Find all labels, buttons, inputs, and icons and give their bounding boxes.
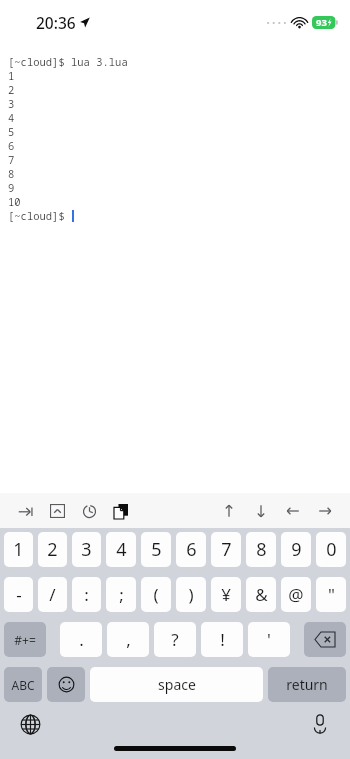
staticText: ; bbox=[119, 583, 124, 606]
button[interactable]: Right bbox=[312, 496, 338, 526]
button[interactable]: #+= bbox=[4, 622, 46, 657]
button[interactable]: Change keyboard bbox=[14, 708, 46, 740]
staticText: 7 bbox=[221, 537, 232, 562]
button[interactable]: Control bbox=[44, 496, 70, 526]
staticText: 2 bbox=[47, 537, 58, 562]
button[interactable]: ! bbox=[201, 622, 243, 657]
button[interactable]: , bbox=[107, 622, 149, 657]
button[interactable]: 9 bbox=[281, 532, 311, 567]
button[interactable]: Left bbox=[280, 496, 306, 526]
button[interactable]: ? bbox=[154, 622, 196, 657]
button[interactable]: Tab bbox=[12, 496, 38, 526]
staticText: 3 bbox=[81, 537, 92, 562]
staticText: ! bbox=[220, 628, 225, 651]
staticText: @ bbox=[288, 583, 304, 606]
staticText: ABC bbox=[11, 677, 35, 693]
staticText: 1 bbox=[8, 69, 15, 83]
staticText: 93 bbox=[316, 16, 327, 29]
button[interactable]: Backspace bbox=[304, 622, 346, 657]
staticText: - bbox=[16, 583, 22, 606]
staticText: return bbox=[286, 675, 328, 694]
button[interactable]: ABC bbox=[4, 667, 42, 702]
button[interactable]: return bbox=[268, 667, 346, 702]
staticText: 5 bbox=[8, 125, 15, 139]
button[interactable]: 8 bbox=[246, 532, 276, 567]
button[interactable]: - bbox=[4, 577, 33, 612]
button[interactable]: ( bbox=[141, 577, 171, 612]
button[interactable]: 6 bbox=[176, 532, 206, 567]
button[interactable]: / bbox=[38, 577, 67, 612]
button[interactable]: : bbox=[72, 577, 101, 612]
staticText: [~cloud]$ lua 3.lua bbox=[8, 55, 128, 69]
button[interactable]: Up bbox=[216, 496, 242, 526]
button[interactable]: space bbox=[90, 667, 263, 702]
button[interactable]: 3 bbox=[72, 532, 101, 567]
button[interactable]: Undo bbox=[76, 496, 102, 526]
button[interactable]: 2 bbox=[38, 532, 67, 567]
staticText: / bbox=[49, 583, 56, 606]
staticText: #+= bbox=[14, 632, 36, 648]
staticText: 2 bbox=[8, 83, 15, 97]
button[interactable]: . bbox=[60, 622, 102, 657]
staticText: ¥ bbox=[221, 583, 231, 606]
staticText: [~cloud]$ bbox=[8, 209, 71, 223]
staticText: " bbox=[328, 583, 335, 606]
staticText: ( bbox=[153, 583, 159, 606]
staticText: 5 bbox=[151, 537, 162, 562]
button[interactable]: " bbox=[316, 577, 346, 612]
staticText: 6 bbox=[186, 537, 197, 562]
button[interactable]: Paste bbox=[108, 496, 134, 526]
button[interactable]: Emoji bbox=[47, 667, 85, 702]
button[interactable]: 0 bbox=[316, 532, 346, 567]
staticText: ) bbox=[188, 583, 194, 606]
staticText: 0 bbox=[326, 537, 337, 562]
button[interactable]: 7 bbox=[211, 532, 241, 567]
staticText: 20:36 bbox=[36, 12, 76, 33]
staticText: 6 bbox=[8, 139, 15, 153]
staticText: ' bbox=[267, 628, 271, 651]
staticText: & bbox=[255, 583, 268, 606]
staticText: 10 bbox=[8, 195, 21, 209]
staticText: 8 bbox=[256, 537, 267, 562]
button[interactable]: ¥ bbox=[211, 577, 241, 612]
staticText: 9 bbox=[291, 537, 302, 562]
staticText: 4 bbox=[116, 537, 127, 562]
button[interactable]: ' bbox=[248, 622, 290, 657]
staticText: : bbox=[84, 583, 89, 606]
button[interactable]: 4 bbox=[106, 532, 136, 567]
staticText: , bbox=[126, 628, 131, 651]
staticText: 1 bbox=[13, 537, 24, 562]
button[interactable]: ) bbox=[176, 577, 206, 612]
button[interactable]: @ bbox=[281, 577, 311, 612]
button[interactable]: ; bbox=[106, 577, 136, 612]
staticText: space bbox=[158, 675, 196, 694]
button[interactable]: Dictation bbox=[304, 708, 336, 740]
button[interactable]: 5 bbox=[141, 532, 171, 567]
staticText: 3 bbox=[8, 97, 15, 111]
staticText: 4 bbox=[8, 111, 15, 125]
staticText: 9 bbox=[8, 181, 15, 195]
button[interactable]: Down bbox=[248, 496, 274, 526]
staticText: 8 bbox=[8, 167, 15, 181]
staticText: ? bbox=[171, 628, 179, 651]
staticText: . bbox=[79, 628, 84, 651]
button[interactable]: & bbox=[246, 577, 276, 612]
staticText: 7 bbox=[8, 153, 15, 167]
button[interactable]: 1 bbox=[4, 532, 33, 567]
